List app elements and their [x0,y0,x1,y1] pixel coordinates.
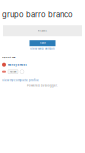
staticText: Home [39,42,45,44]
button[interactable]: View web version [0,47,85,50]
staticText: View web version [30,47,55,50]
button[interactable]: View my complete profile [2,79,39,82]
staticText: About me [2,55,15,59]
staticText: No posts. [37,29,47,32]
staticText: View my complete profile [2,79,39,82]
button[interactable]: Home [29,40,55,46]
staticText: mandy amoas [7,63,26,66]
staticText: grupo barro branco [2,10,73,19]
staticText: Powered by Blogger. [27,84,58,87]
button[interactable]: mandy amoas [2,63,26,67]
button[interactable]: Follow [8,70,18,74]
staticText: Follow [9,70,16,73]
